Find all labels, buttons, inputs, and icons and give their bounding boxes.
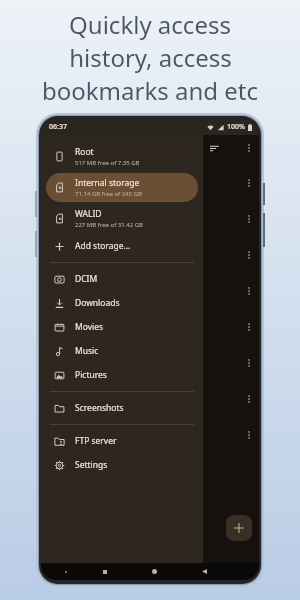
staticText: Root: [75, 146, 94, 158]
staticText: Settings: [75, 459, 108, 471]
button[interactable]: Root: [46, 142, 198, 171]
staticText: Downloads: [75, 297, 120, 309]
button[interactable]: DCIM: [46, 267, 198, 291]
button[interactable]: WALID: [46, 204, 198, 233]
button[interactable]: Music: [46, 339, 198, 363]
button[interactable]: More options: [243, 213, 255, 225]
staticText: Movies: [75, 321, 104, 333]
button[interactable]: Recents: [80, 563, 129, 580]
staticText: 100%: [227, 122, 245, 132]
button[interactable]: Settings: [46, 453, 198, 477]
button[interactable]: More options: [243, 393, 255, 405]
staticText: 71.14 GB free of 245 GB: [75, 190, 142, 198]
staticText: Quickly access: [69, 8, 231, 41]
staticText: 227 MB free of 31.42 GB: [75, 221, 143, 229]
button[interactable]: FTP server: [46, 429, 198, 453]
staticText: FTP server: [75, 435, 117, 447]
button[interactable]: Screenshots: [46, 396, 198, 420]
staticText: Internal storage: [75, 177, 140, 189]
staticText: Add storage...: [75, 240, 131, 252]
button[interactable]: Downloads: [46, 291, 198, 315]
button[interactable]: Home: [129, 563, 179, 580]
staticText: history, access: [69, 41, 232, 74]
button[interactable]: More options: [243, 429, 255, 441]
staticText: WALID: [75, 208, 102, 220]
staticText: Pictures: [75, 369, 107, 381]
button[interactable]: More options: [243, 177, 255, 189]
button[interactable]: Internal storage: [46, 173, 198, 202]
button[interactable]: Add: [226, 515, 252, 541]
staticText: Screenshots: [75, 402, 124, 414]
staticText: Music: [75, 345, 99, 357]
button[interactable]: Movies: [46, 315, 198, 339]
button[interactable]: More options: [243, 357, 255, 369]
button[interactable]: More options: [243, 249, 255, 261]
button[interactable]: Pictures: [46, 363, 198, 387]
button[interactable]: Sort: [208, 142, 220, 154]
button[interactable]: More options: [243, 321, 255, 333]
staticText: 06:37: [49, 122, 67, 132]
button[interactable]: Back: [179, 563, 229, 580]
staticText: DCIM: [75, 273, 98, 285]
button[interactable]: More options: [243, 142, 255, 154]
staticText: 517 MB free of 7.35 GB: [75, 159, 140, 167]
button[interactable]: Add storage...: [46, 234, 198, 258]
staticText: bookmarks and etc: [42, 74, 258, 107]
button[interactable]: More options: [243, 285, 255, 297]
